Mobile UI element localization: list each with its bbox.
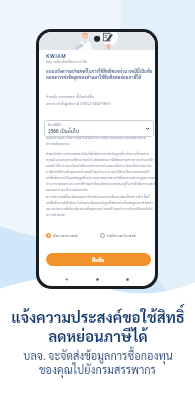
staticText: แจ้งความประสงค์ขอใช้สิทธิ์ xyxy=(11,307,185,326)
staticText: กรุณาอ่านและทำความเข้าใจเงื่อนไขการให้คว… xyxy=(46,135,155,146)
staticText: ความประสงค์นี้จะมีผลจนกว่าข้าพเจ้าจะแจ้ง… xyxy=(46,194,155,217)
button[interactable]: ปีภาษีที่ใช้ xyxy=(44,120,154,137)
other: Back xyxy=(64,277,69,282)
staticText: ลดหย่อนภาษีได้ xyxy=(48,326,148,345)
staticText: มีความประสงค์ xyxy=(53,233,78,238)
other: Home xyxy=(95,277,100,282)
staticText: ปีภาษีที่ใช้ xyxy=(48,123,61,127)
staticText: ไม่มีความประสงค์ xyxy=(107,233,136,238)
button[interactable]: มีความประสงค์ xyxy=(46,233,100,238)
staticText: ข้าพเจ้า นายทดสอบ ตั้งใจทำดีมั่น เลขประจ… xyxy=(46,94,111,106)
other: Recents xyxy=(125,277,130,282)
button[interactable]: ไม่มีความประสงค์ xyxy=(100,233,155,238)
staticText: KWIAM xyxy=(46,52,67,59)
button[interactable]: ยืนยัน xyxy=(46,253,151,266)
staticText: 2568 เป็นต้นไป xyxy=(48,128,80,134)
staticText: บลจ. หลักทรัพย์จัดการ จำกัด xyxy=(46,59,87,64)
staticText: ของคุณไปยังกรมสรรพากร xyxy=(39,362,156,376)
staticText: บลจ. จะจัดส่งข้อมูลการซื้อกองทุน xyxy=(23,348,173,362)
staticText: ยืนยัน xyxy=(92,257,105,263)
staticText: ข้าพเจ้ามีความประสงค์จะให้บริษัทจัดการนำ… xyxy=(46,151,155,192)
staticText: แบบแจ้งความประสงค์ในการใช้สิทธิของท่าน ก… xyxy=(46,68,155,80)
